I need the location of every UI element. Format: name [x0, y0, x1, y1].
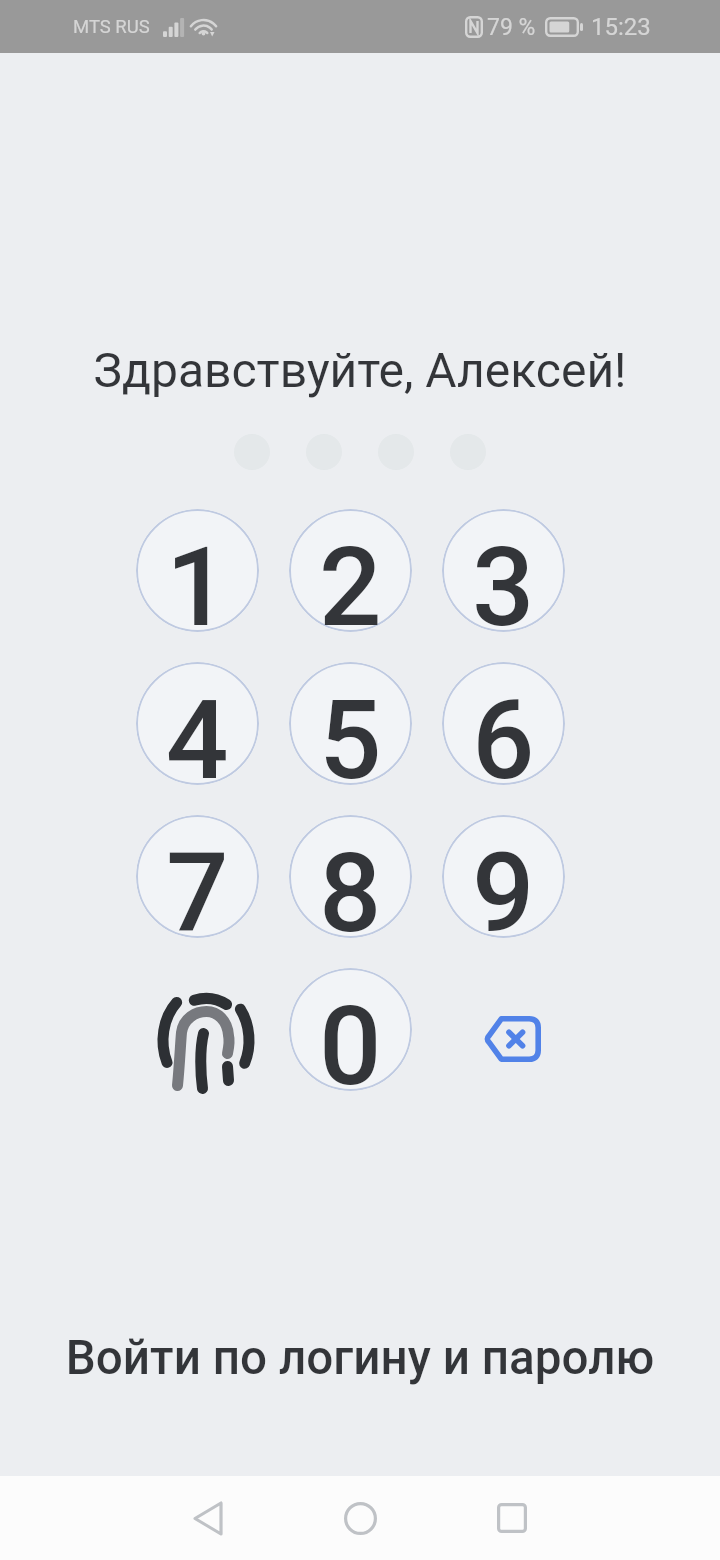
- staticText: 6: [472, 676, 535, 785]
- staticText: 9: [472, 829, 535, 938]
- staticText: 3: [472, 523, 535, 632]
- button[interactable]: 4: [136, 662, 259, 785]
- staticText: 8: [319, 829, 382, 938]
- button[interactable]: 3: [442, 509, 565, 632]
- staticText: 4: [166, 676, 229, 785]
- staticText: Здравствуйте, Алексей!: [0, 342, 720, 398]
- staticText: MTS RUS: [73, 16, 150, 38]
- button[interactable]: Back: [163, 1476, 253, 1560]
- staticText: 15:23: [591, 13, 651, 41]
- button[interactable]: 1: [136, 509, 259, 632]
- staticText: 79 %: [487, 14, 536, 41]
- staticText: Войти по логину и паролю: [0, 1330, 720, 1386]
- button[interactable]: 9: [442, 815, 565, 938]
- button[interactable]: 2: [289, 509, 412, 632]
- button[interactable]: Home: [315, 1476, 405, 1560]
- button[interactable]: 5: [289, 662, 412, 785]
- staticText: 7: [166, 829, 229, 938]
- staticText: 5: [319, 676, 382, 785]
- staticText: 2: [319, 523, 382, 632]
- button[interactable]: 0: [289, 968, 412, 1091]
- button[interactable]: 7: [136, 815, 259, 938]
- staticText: 1: [166, 523, 229, 632]
- button[interactable]: Unlock with fingerprint: [136, 968, 259, 1091]
- button[interactable]: 6: [442, 662, 565, 785]
- staticText: 0: [319, 982, 382, 1091]
- button[interactable]: Recents: [467, 1476, 557, 1560]
- button[interactable]: Backspace: [442, 968, 565, 1091]
- button[interactable]: 8: [289, 815, 412, 938]
